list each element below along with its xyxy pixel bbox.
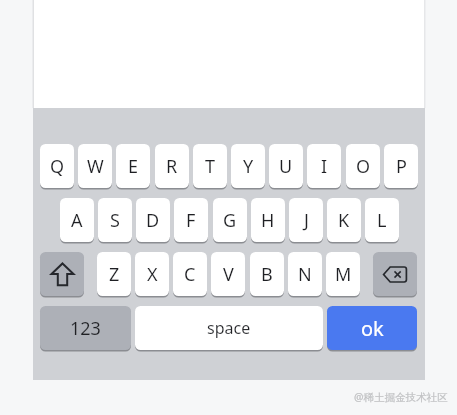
button[interactable]: V [211,252,245,296]
button[interactable]: ok [327,306,417,350]
button[interactable]: T [193,144,227,188]
staticText: G [223,208,237,233]
button[interactable]: R [155,144,189,188]
staticText: K [338,208,350,233]
button[interactable]: I [307,144,341,188]
button[interactable]: space [135,306,323,350]
button[interactable]: P [384,144,418,188]
staticText: S [110,208,120,233]
staticText: R [166,154,178,179]
button[interactable]: N [288,252,322,296]
staticText: space [207,317,251,339]
button[interactable]: X [135,252,169,296]
staticText: F [186,208,196,233]
staticText: D [146,208,160,233]
staticText: I [321,154,328,179]
staticText: Z [109,262,120,287]
button[interactable]: Z [97,252,131,296]
staticText: P [396,154,407,179]
staticText: W [87,154,104,179]
staticText: B [261,262,273,287]
staticText: J [304,208,309,233]
button[interactable]: 123 [40,306,131,350]
staticText: E [128,154,139,179]
button[interactable]: O [346,144,380,188]
button[interactable]: L [365,198,399,242]
button[interactable]: Q [40,144,74,188]
staticText: Q [50,154,65,179]
staticText: T [205,154,216,179]
button[interactable]: S [98,198,132,242]
button[interactable]: H [251,198,285,242]
staticText: L [377,208,387,233]
button[interactable]: D [136,198,170,242]
staticText: Y [243,154,254,179]
staticText: O [356,154,371,179]
button[interactable]: G [213,198,247,242]
staticText: ok [361,315,384,342]
button[interactable]: M [326,252,360,296]
button[interactable] [373,252,417,296]
button[interactable]: B [250,252,284,296]
staticText: A [71,208,83,233]
button[interactable]: A [60,198,94,242]
staticText: N [298,262,312,287]
staticText: @稀土掘金技术社区 [354,390,448,404]
button[interactable]: Y [231,144,265,188]
button[interactable]: U [269,144,303,188]
button[interactable] [40,252,84,296]
button[interactable]: J [289,198,323,242]
staticText: 123 [70,316,101,341]
staticText: M [335,262,352,287]
staticText: V [223,262,234,287]
staticText: H [261,208,275,233]
button[interactable]: W [78,144,112,188]
staticText: C [184,262,196,287]
button[interactable]: K [327,198,361,242]
button[interactable]: F [174,198,208,242]
button[interactable]: C [173,252,207,296]
staticText: X [147,262,158,287]
button[interactable]: E [116,144,150,188]
staticText: U [279,154,293,179]
